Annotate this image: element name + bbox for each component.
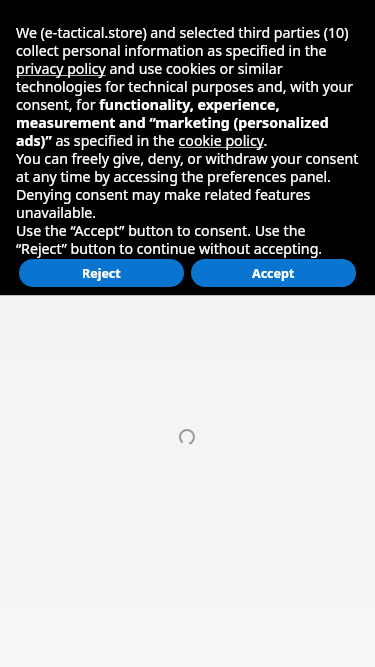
staticText: Reject [82, 265, 121, 282]
staticText: We (e-tactical.store) and selected third… [16, 23, 359, 259]
staticText: Accept [252, 265, 295, 282]
button[interactable]: Accept [191, 259, 356, 287]
button[interactable]: Reject [19, 259, 184, 287]
